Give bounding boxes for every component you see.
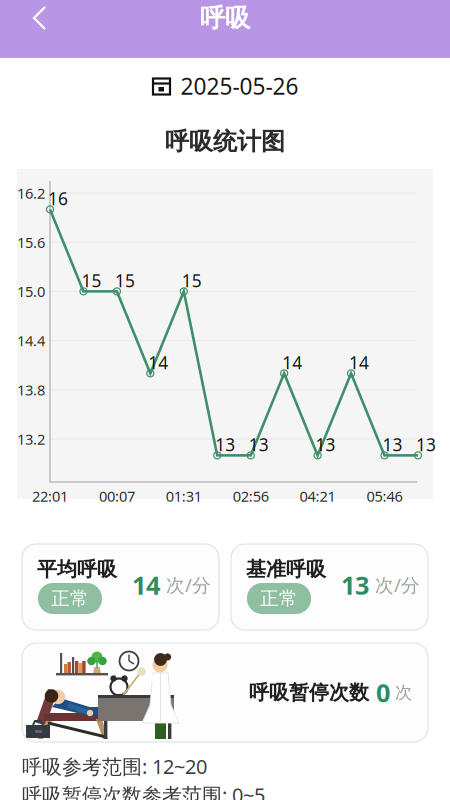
button[interactable]: 2025-05-26 [151, 58, 298, 114]
staticText: 呼吸参考范围: 12~20 [22, 753, 207, 780]
staticText: 次/分 [369, 572, 420, 597]
staticText: 次 [390, 682, 412, 703]
button[interactable]: 呼吸暂停次数 [22, 643, 428, 742]
staticText: 13.8 [17, 380, 45, 400]
staticText: 13 [341, 568, 369, 602]
staticText: 05:46 [366, 486, 402, 506]
staticText: 14 [148, 351, 168, 374]
staticText: 15 [115, 269, 135, 292]
staticText: 04:21 [300, 486, 336, 506]
button[interactable]: 平均呼吸 [22, 544, 219, 630]
staticText: 2025-05-26 [180, 71, 298, 101]
staticText: 13 [249, 433, 269, 456]
staticText: 15 [81, 269, 101, 292]
staticText: 次/分 [160, 572, 211, 597]
staticText: 22:01 [32, 486, 68, 506]
staticText: 正常 [51, 587, 89, 610]
staticText: 基准呼吸 [246, 557, 326, 582]
staticText: 13.2 [17, 429, 45, 449]
staticText: 平均呼吸 [37, 557, 117, 582]
staticText: 13 [416, 433, 436, 456]
button[interactable]: Back [0, 0, 40, 36]
staticText: 0 [369, 676, 390, 709]
staticText: 15 [182, 269, 202, 292]
staticText: 13 [382, 433, 402, 456]
staticText: 16 [48, 187, 68, 210]
staticText: 呼吸统计图 [165, 127, 285, 156]
staticText: 呼吸 [200, 2, 250, 33]
staticText: 呼吸暂停次数参考范围: 0~5 [22, 782, 265, 800]
staticText: 14 [282, 351, 302, 374]
button[interactable]: 基准呼吸 [231, 544, 428, 630]
staticText: 15.6 [17, 232, 45, 252]
staticText: 14.4 [17, 331, 45, 350]
staticText: 01:31 [166, 486, 202, 506]
staticText: 15.0 [17, 282, 45, 301]
staticText: 呼吸暂停次数 [249, 680, 369, 705]
staticText: 16.2 [17, 183, 45, 203]
staticText: 00:07 [99, 486, 135, 506]
staticText: 13 [316, 433, 336, 456]
staticText: 02:56 [233, 486, 269, 506]
staticText: 14 [349, 351, 369, 374]
staticText: 13 [215, 433, 235, 456]
staticText: 正常 [260, 587, 298, 610]
staticText: 14 [132, 568, 160, 602]
